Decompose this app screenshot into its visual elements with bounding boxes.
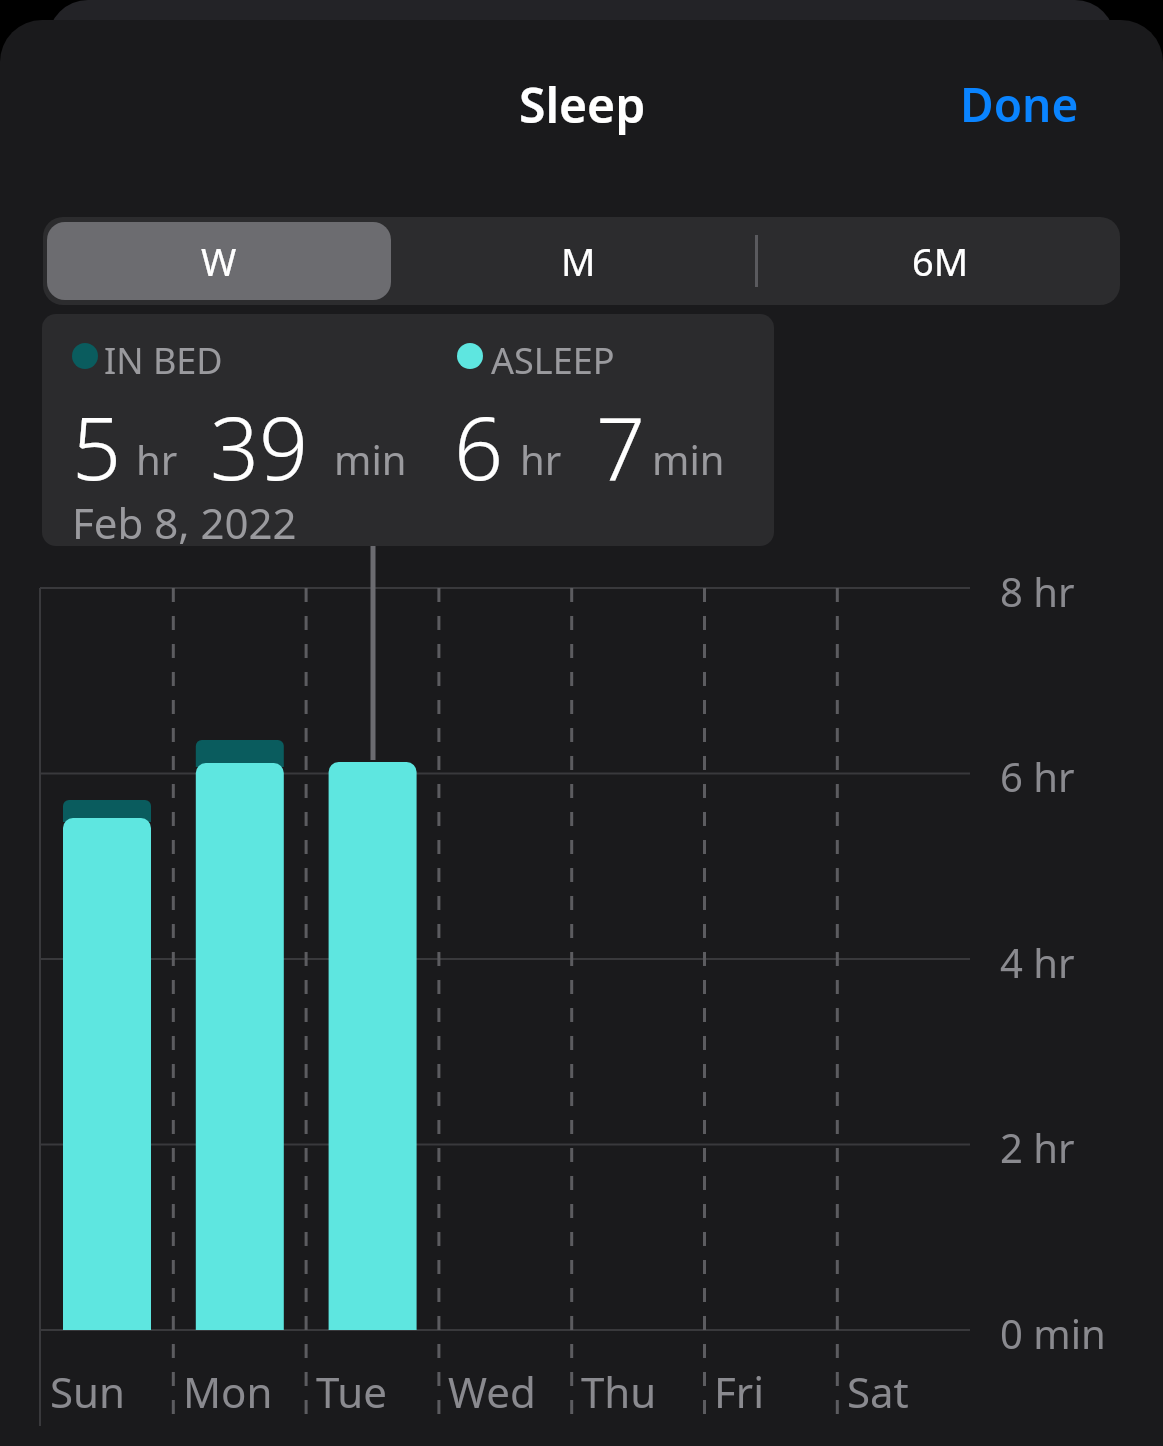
staticText: 6M <box>912 235 969 287</box>
staticText: 6 <box>454 388 504 488</box>
staticText: Feb 8, 2022 <box>72 494 297 546</box>
button[interactable]: M <box>403 217 753 305</box>
button[interactable]: Done <box>960 62 1130 146</box>
staticText: M <box>561 235 596 287</box>
staticText: min <box>652 432 725 486</box>
staticText: Thu <box>581 1363 657 1420</box>
staticText: Sat <box>847 1363 909 1420</box>
staticText: IN BED <box>104 336 223 385</box>
staticText: 8 hr <box>1000 564 1075 618</box>
staticText: 4 hr <box>1000 935 1075 989</box>
button[interactable]: 6M <box>763 217 1117 305</box>
staticText: 5 <box>72 388 122 488</box>
staticText: 39 <box>210 388 309 488</box>
staticText: hr <box>520 432 562 486</box>
staticText: min <box>334 432 407 486</box>
staticText: Sleep <box>519 72 646 137</box>
staticText: 0 min <box>1000 1306 1106 1360</box>
staticText: Sun <box>50 1363 125 1420</box>
button[interactable]: W <box>47 217 391 305</box>
staticText: Fri <box>714 1363 764 1420</box>
staticText: Done <box>960 73 1079 136</box>
staticText: 7 <box>596 388 646 488</box>
staticText: Mon <box>183 1363 273 1420</box>
staticText: Wed <box>448 1363 536 1420</box>
staticText: 6 hr <box>1000 749 1075 803</box>
button[interactable]: IN BED <box>42 314 774 546</box>
staticText: ASLEEP <box>491 336 615 385</box>
staticText: 2 hr <box>1000 1120 1075 1174</box>
staticText: hr <box>136 432 178 486</box>
staticText: W <box>201 235 237 287</box>
staticText: Tue <box>316 1363 387 1420</box>
